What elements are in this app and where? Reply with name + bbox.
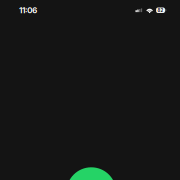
staticText: 82 xyxy=(158,7,164,13)
staticText: 11:06 xyxy=(19,5,37,15)
button[interactable]: Record xyxy=(66,167,116,180)
